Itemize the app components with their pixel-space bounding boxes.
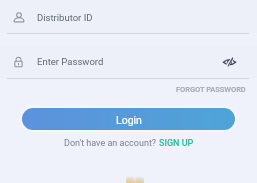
staticText: Don't have an account? <box>64 138 159 149</box>
button[interactable]: Login <box>22 108 235 130</box>
button[interactable]: FORGOT PASSWORD <box>176 83 257 96</box>
button[interactable]: Distributor ID <box>0 0 257 33</box>
button[interactable]: SIGN UP <box>159 138 194 149</box>
staticText: FORGOT PASSWORD <box>176 85 246 94</box>
staticText: SIGN UP <box>159 138 194 149</box>
button[interactable]: Enter Password <box>0 45 257 78</box>
button[interactable]: Show password <box>221 53 238 70</box>
staticText: Enter Password <box>37 56 104 67</box>
staticText: Distributor ID <box>37 12 93 23</box>
staticText: Login <box>116 114 142 126</box>
